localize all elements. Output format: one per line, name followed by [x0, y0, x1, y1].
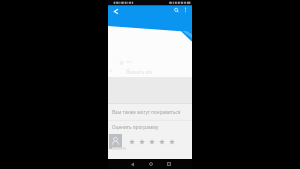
button[interactable]: Rate 1 star	[127, 134, 137, 149]
button[interactable]: Search	[172, 6, 181, 15]
button[interactable]: Home	[146, 159, 156, 169]
button[interactable]: Back	[127, 159, 137, 169]
button[interactable]: Rate 5 star	[167, 134, 177, 149]
button[interactable]: Recent apps	[164, 159, 174, 169]
button[interactable]: Rate 2 star	[137, 134, 147, 149]
staticText: Вам также могут понравиться	[112, 109, 181, 115]
button[interactable]: Rate 3 star	[147, 134, 157, 149]
button[interactable]: Navigate up	[111, 7, 120, 16]
button[interactable]: Account	[109, 134, 122, 149]
staticText: Оценить программу	[112, 124, 159, 130]
button[interactable]: More options	[181, 6, 190, 15]
button[interactable]: Вам также могут понравиться	[108, 104, 192, 120]
button[interactable]: Оценить это	[126, 69, 153, 75]
button[interactable]: Rate 4 star	[157, 134, 167, 149]
